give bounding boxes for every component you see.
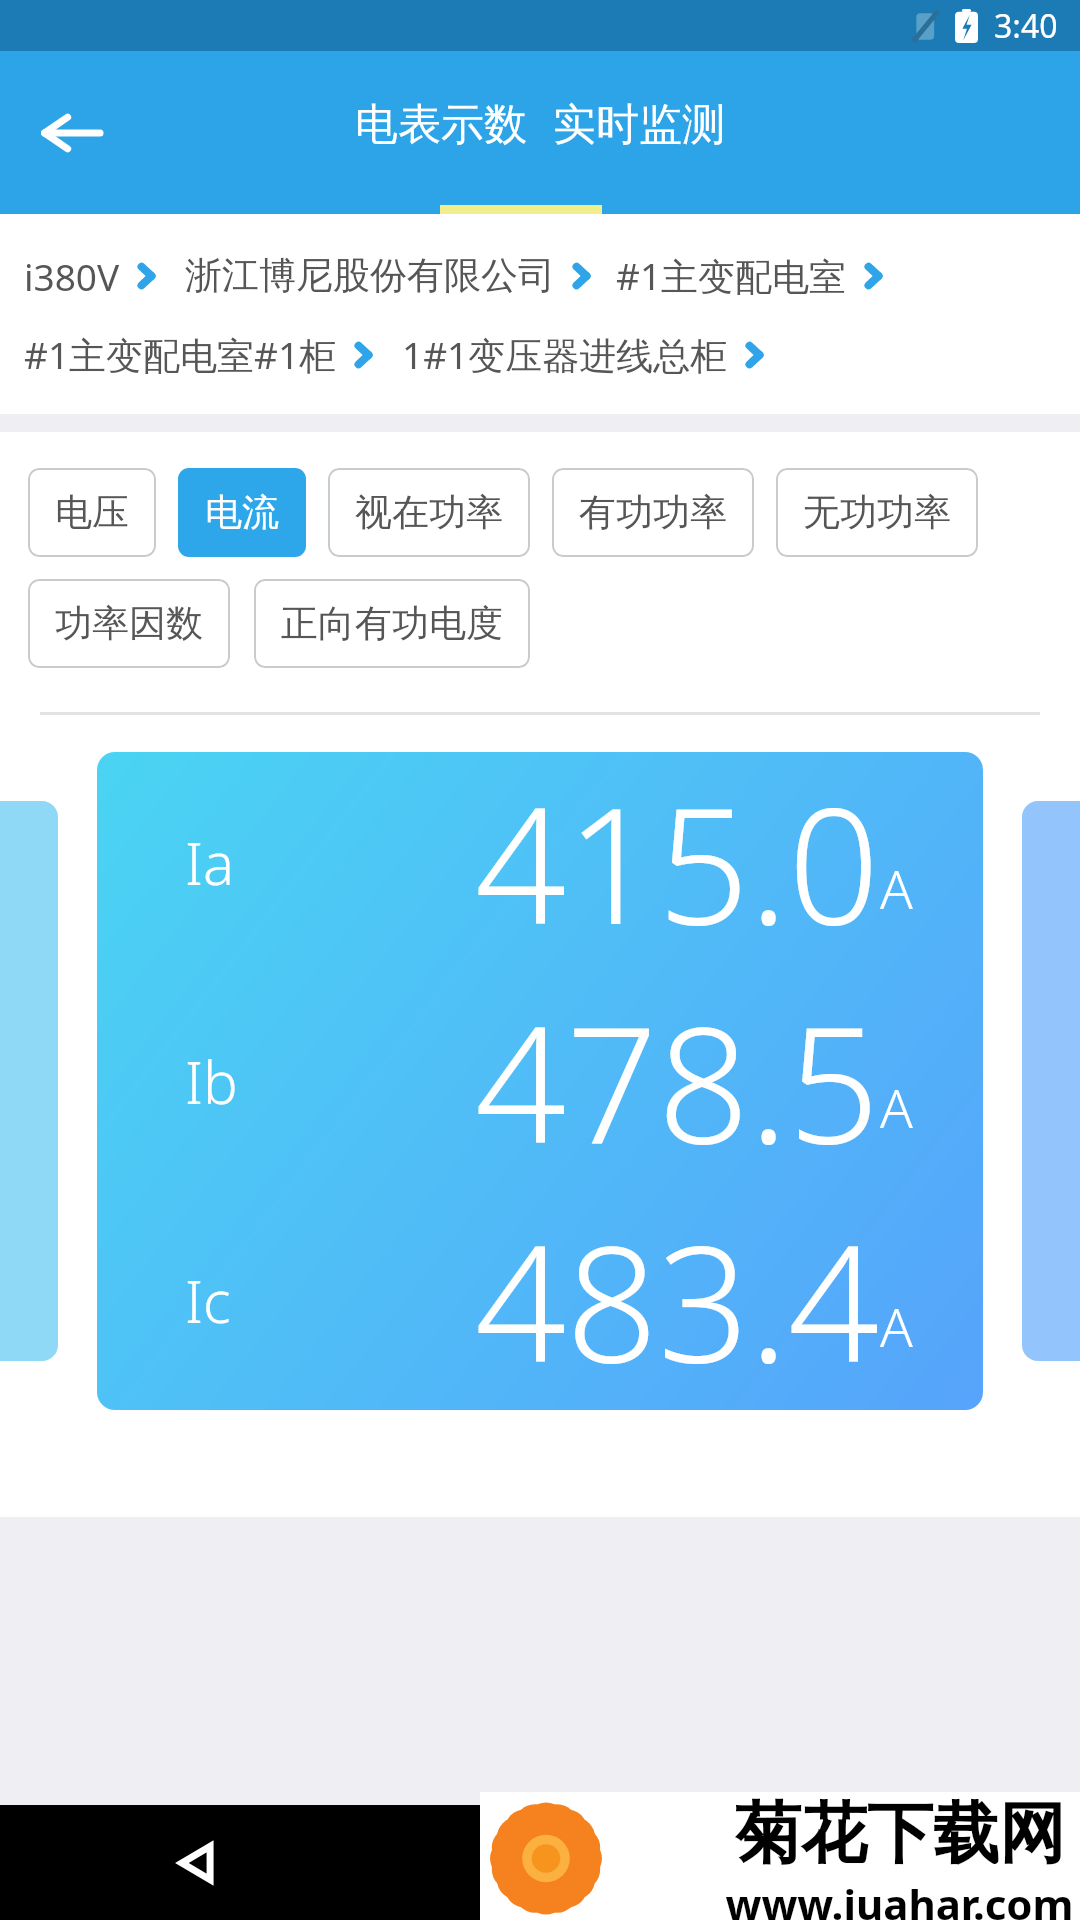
- staticText: A: [880, 1070, 913, 1144]
- button[interactable]: 电表示数: [355, 98, 527, 152]
- button[interactable]: Ia: [97, 752, 983, 1410]
- staticText: 实时监测: [553, 98, 725, 152]
- button[interactable]: 电压: [28, 468, 156, 557]
- button[interactable]: 正向有功电度: [254, 579, 530, 668]
- staticText: 正向有功电度: [281, 600, 503, 647]
- staticText: 视在功率: [355, 489, 503, 536]
- staticText: 无功功率: [803, 489, 951, 536]
- staticText: 415.0: [475, 753, 880, 971]
- staticText: Ia: [185, 823, 235, 902]
- staticText: Ic: [185, 1261, 231, 1340]
- staticText: 3:40: [994, 4, 1058, 48]
- staticText: 电压: [55, 489, 129, 536]
- button[interactable]: 实时监测: [553, 98, 725, 152]
- staticText: A: [880, 851, 913, 925]
- staticText: 1#1变压器进线总柜: [402, 329, 728, 380]
- button[interactable]: #1主变配电室: [616, 250, 886, 301]
- staticText: 浙江博尼股份有限公司: [185, 252, 555, 299]
- staticText: #1主变配电室#1柜: [24, 329, 337, 380]
- button[interactable]: 有功功率: [552, 468, 754, 557]
- staticText: 478.5: [475, 972, 880, 1190]
- button[interactable]: Back: [158, 1825, 234, 1901]
- button[interactable]: Back: [38, 100, 104, 166]
- button[interactable]: [1022, 801, 1080, 1361]
- staticText: 电流: [205, 489, 279, 536]
- staticText: #1主变配电室: [616, 250, 847, 301]
- button[interactable]: Home: [465, 1825, 541, 1901]
- button[interactable]: #1主变配电室#1柜: [24, 329, 376, 380]
- staticText: www.juahar.com: [725, 1875, 1074, 1920]
- button[interactable]: i380V: [24, 251, 159, 301]
- staticText: 电表示数: [355, 98, 527, 152]
- staticText: A: [880, 1289, 913, 1363]
- button[interactable]: [0, 801, 58, 1361]
- staticText: 有功功率: [579, 489, 727, 536]
- staticText: i380V: [24, 251, 120, 301]
- button[interactable]: 1#1变压器进线总柜: [402, 329, 767, 380]
- staticText: 功率因数: [55, 600, 203, 647]
- button[interactable]: 浙江博尼股份有限公司: [185, 252, 594, 299]
- button[interactable]: 功率因数: [28, 579, 230, 668]
- staticText: Ib: [185, 1042, 238, 1121]
- button[interactable]: 视在功率: [328, 468, 530, 557]
- staticText: 菊花下载网: [735, 1792, 1065, 1875]
- staticText: 483.4: [475, 1191, 880, 1409]
- button[interactable]: 无功功率: [776, 468, 978, 557]
- button[interactable]: 电流: [178, 468, 306, 557]
